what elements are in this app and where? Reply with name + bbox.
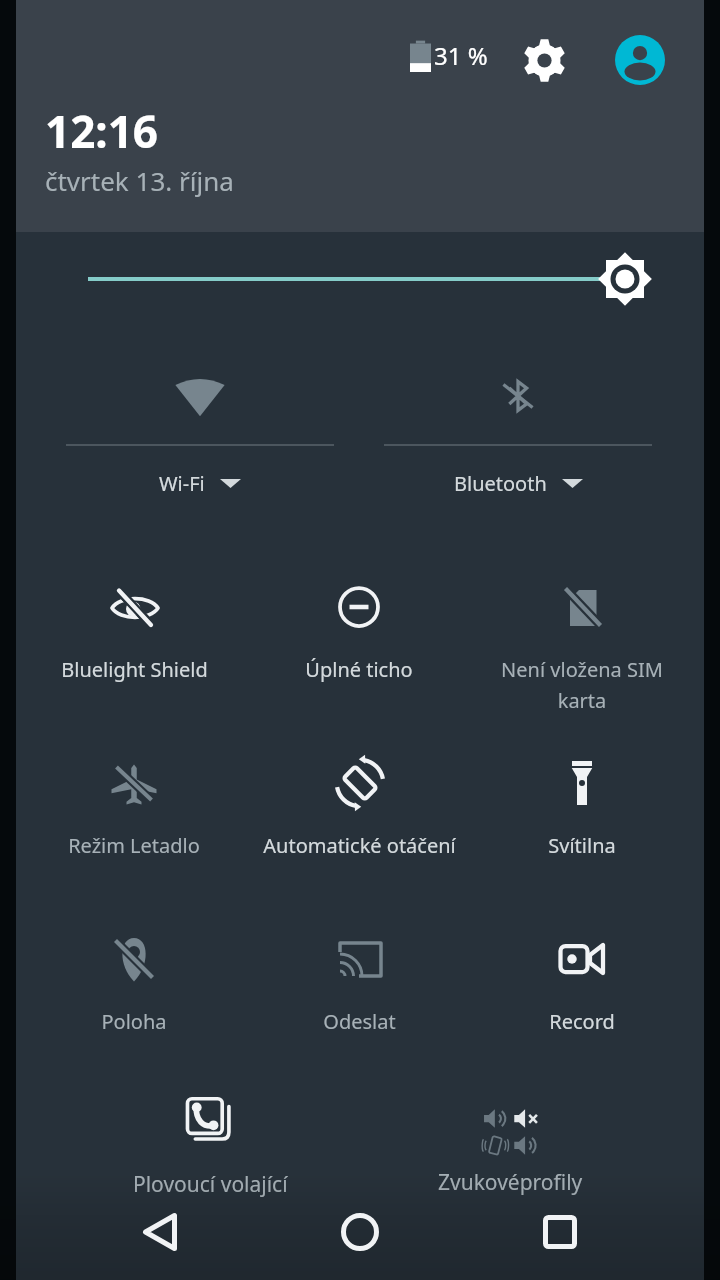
button[interactable]: Settings (500, 16, 588, 104)
button[interactable]: Režim Letadlo (22, 754, 246, 902)
button[interactable]: Odeslat (247, 930, 471, 1078)
staticText: Automatické otáčení (263, 832, 456, 859)
staticText: Bluelight Shield (61, 656, 208, 683)
button[interactable]: Není vložena SIM karta (470, 578, 694, 726)
staticText: 31 % (434, 39, 488, 72)
staticText: Úplné ticho (305, 656, 413, 683)
staticText: Poloha (101, 1008, 167, 1035)
staticText: čtvrtek 13. října (45, 163, 234, 198)
staticText: Odeslat (323, 1008, 396, 1035)
staticText: Bluetooth (454, 470, 547, 497)
staticText: Plovoucí volající (133, 1170, 288, 1199)
button[interactable]: Automatické otáčení (247, 754, 471, 902)
button[interactable]: Recent apps (514, 1190, 606, 1274)
button[interactable]: Brightness (16, 240, 704, 316)
button[interactable]: Record (470, 930, 694, 1078)
button[interactable]: Poloha (22, 930, 246, 1078)
button[interactable]: Zvukovéprofily (400, 1092, 620, 1220)
button[interactable]: Bluelight Shield (22, 578, 246, 726)
button[interactable]: Home (314, 1190, 406, 1274)
button[interactable]: Wi-Fi (44, 352, 356, 512)
staticText: Svítilna (548, 832, 616, 859)
button[interactable]: Svítilna (470, 754, 694, 902)
button[interactable]: Úplné ticho (247, 578, 471, 726)
button[interactable]: Bluetooth (362, 352, 674, 512)
staticText: Není vložena SIM karta (501, 656, 663, 713)
button[interactable]: Plovoucí volající (100, 1092, 320, 1220)
staticText: Wi-Fi (159, 470, 205, 497)
staticText: Režim Letadlo (68, 832, 200, 859)
staticText: 12:16 (45, 101, 159, 161)
button[interactable]: Back (114, 1190, 206, 1274)
staticText: Zvukovéprofily (438, 1168, 583, 1197)
button[interactable]: User profile (596, 16, 684, 104)
staticText: Record (549, 1008, 615, 1035)
